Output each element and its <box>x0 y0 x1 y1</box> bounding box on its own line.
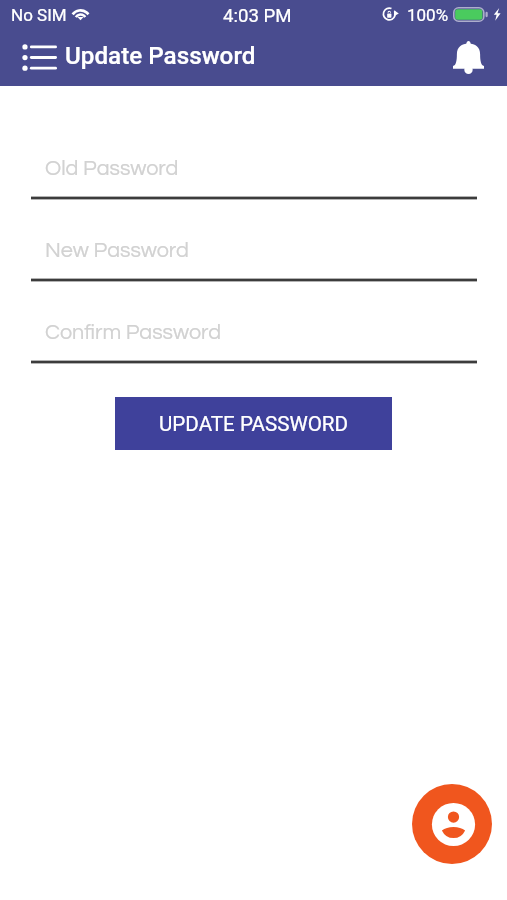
button[interactable]: Account <box>412 784 492 864</box>
button[interactable]: Menu <box>14 32 65 83</box>
staticText: Old Password <box>45 157 179 179</box>
staticText: No SIM <box>11 5 67 25</box>
staticText: 100% <box>407 5 449 25</box>
staticText: Update Password <box>65 42 256 70</box>
staticText: New Password <box>45 239 189 261</box>
button[interactable]: UPDATE PASSWORD <box>115 397 392 450</box>
staticText: 4:03 PM <box>223 5 292 27</box>
button[interactable]: Notifications <box>446 33 491 78</box>
staticText: Confirm Password <box>45 321 222 343</box>
staticText: UPDATE PASSWORD <box>159 412 349 436</box>
